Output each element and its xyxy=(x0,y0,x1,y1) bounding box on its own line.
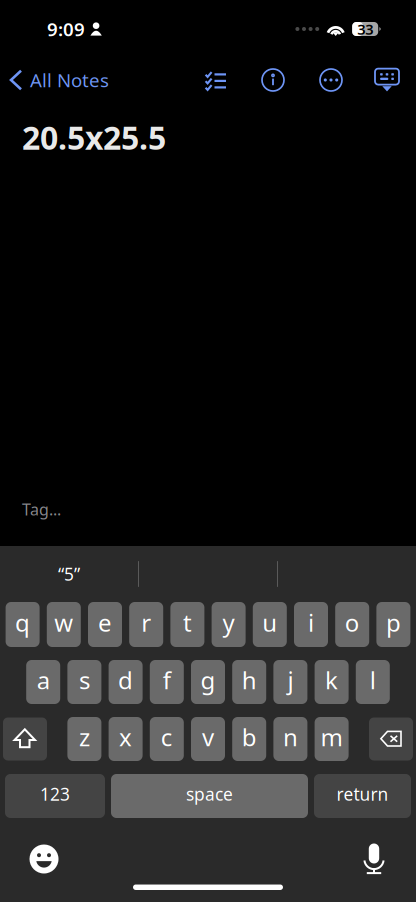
staticText: 123 xyxy=(40,782,70,805)
button[interactable]: a xyxy=(26,660,60,704)
staticText: All Notes xyxy=(30,68,109,92)
staticText: o xyxy=(345,607,360,638)
staticText: i xyxy=(308,607,314,638)
staticText: c xyxy=(161,721,173,753)
button[interactable]: More xyxy=(302,60,360,100)
button[interactable]: Emoji xyxy=(15,843,73,875)
button[interactable]: h xyxy=(232,660,266,704)
staticText: m xyxy=(321,721,343,753)
button[interactable]: Checklist xyxy=(188,60,244,100)
button[interactable]: Delete xyxy=(369,717,413,760)
staticText: g xyxy=(200,664,215,696)
button[interactable]: k xyxy=(315,660,349,704)
staticText: d xyxy=(118,664,133,696)
button[interactable]: m xyxy=(315,717,349,761)
staticText: return xyxy=(336,782,388,805)
button[interactable]: t xyxy=(170,602,204,647)
button[interactable]: d xyxy=(109,660,143,704)
staticText: u xyxy=(262,607,277,638)
staticText: w xyxy=(54,607,73,638)
button[interactable]: “5” xyxy=(0,546,138,602)
staticText: v xyxy=(202,721,214,753)
staticText: y xyxy=(223,607,235,638)
staticText: 20.5x25.5 xyxy=(22,116,166,158)
button[interactable]: 123 xyxy=(5,774,105,818)
button[interactable]: Info xyxy=(244,60,302,100)
button[interactable]: f xyxy=(150,660,184,704)
button[interactable]: y xyxy=(212,602,246,647)
staticText: x xyxy=(119,721,132,753)
button[interactable]: s xyxy=(67,660,101,704)
staticText: e xyxy=(98,607,112,638)
button[interactable]: o xyxy=(335,602,369,647)
button[interactable]: e xyxy=(88,602,122,647)
button[interactable]: l xyxy=(356,660,390,704)
button[interactable]: q xyxy=(6,602,40,647)
staticText: f xyxy=(163,664,171,696)
staticText: z xyxy=(79,721,90,753)
staticText: 33 xyxy=(357,19,373,39)
button[interactable]: Dictation xyxy=(345,843,403,875)
staticText: space xyxy=(186,782,233,805)
staticText: s xyxy=(79,664,90,696)
staticText: j xyxy=(287,664,293,696)
button[interactable]: return xyxy=(314,774,411,818)
staticText: h xyxy=(242,664,257,696)
button[interactable]: p xyxy=(376,602,410,647)
staticText: k xyxy=(325,664,338,696)
button[interactable]: g xyxy=(191,660,225,704)
button[interactable]: v xyxy=(191,717,225,761)
button[interactable]: w xyxy=(47,602,81,647)
staticText: b xyxy=(242,721,257,753)
button[interactable]: c xyxy=(150,717,184,761)
button[interactable]: Hide Keyboard xyxy=(360,60,414,100)
button[interactable]: z xyxy=(67,717,101,761)
staticText: Tag... xyxy=(22,499,61,520)
staticText: p xyxy=(386,607,401,638)
staticText: q xyxy=(15,607,30,638)
button[interactable]: j xyxy=(273,660,307,704)
button[interactable]: i xyxy=(294,602,328,647)
staticText: 9:09 xyxy=(47,17,85,41)
staticText: n xyxy=(283,721,298,753)
staticText: a xyxy=(37,664,50,696)
button[interactable]: Shift xyxy=(3,717,47,760)
button[interactable]: b xyxy=(232,717,266,761)
button[interactable]: u xyxy=(253,602,287,647)
button[interactable]: n xyxy=(273,717,307,761)
staticText: t xyxy=(183,607,192,638)
button[interactable]: x xyxy=(109,717,143,761)
button[interactable]: r xyxy=(129,602,163,647)
staticText: l xyxy=(370,664,376,696)
button[interactable]: All Notes xyxy=(0,62,119,98)
button[interactable]: space xyxy=(111,774,308,818)
staticText: r xyxy=(141,607,151,638)
staticText: “5” xyxy=(58,562,80,585)
